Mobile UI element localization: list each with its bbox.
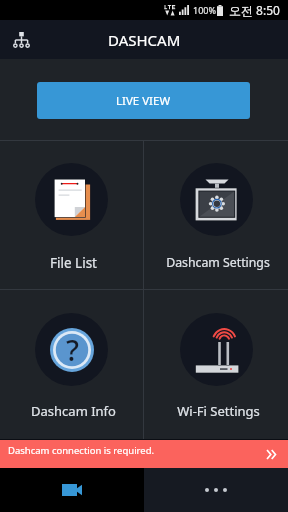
button[interactable]: Live view: [0, 468, 144, 512]
staticText: Wi-Fi Settings: [177, 402, 260, 420]
other: Details: [266, 449, 276, 460]
staticText: 100%: [193, 4, 216, 16]
button[interactable]: File List: [0, 141, 143, 289]
staticText: 오전 8:50: [229, 2, 280, 18]
staticText: LIVE VIEW: [116, 93, 171, 109]
staticText: File List: [50, 254, 97, 272]
staticText: Dashcam Settings: [166, 254, 270, 271]
button[interactable]: Dashcam connection is required.: [0, 440, 288, 468]
staticText: Dashcam connection is required.: [8, 444, 155, 457]
staticText: Dashcam Info: [31, 402, 116, 420]
button[interactable]: Connection status: [0, 20, 43, 59]
button[interactable]: Dashcam Settings: [144, 141, 288, 289]
button[interactable]: LIVE VIEW: [37, 82, 250, 119]
button[interactable]: Wi-Fi Settings: [144, 290, 288, 439]
button[interactable]: ?: [0, 290, 143, 439]
staticText: ?: [66, 330, 79, 369]
staticText: DASHCAM: [108, 30, 181, 50]
button[interactable]: More options: [144, 468, 288, 512]
